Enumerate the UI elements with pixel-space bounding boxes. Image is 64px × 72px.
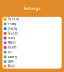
staticText: Sounds [8, 32, 18, 35]
button[interactable]: Siri [2, 50, 62, 54]
button[interactable]: Safari [2, 59, 62, 64]
staticText: Music [8, 64, 15, 68]
staticText: Battery [8, 55, 17, 59]
staticText: Wallet [8, 41, 16, 44]
button[interactable]: Health [2, 45, 62, 50]
button[interactable]: Sounds [2, 31, 62, 36]
button[interactable]: Wallet [2, 40, 62, 45]
staticText: Safari [8, 60, 14, 63]
button[interactable]: Focus [2, 36, 62, 40]
button[interactable]: Display [2, 26, 62, 31]
button[interactable]: Privacy [2, 22, 62, 26]
staticText: Health [8, 46, 17, 49]
staticText: Settings [23, 5, 40, 11]
staticText: Privacy [8, 22, 16, 26]
button[interactable]: Battery [2, 54, 62, 59]
staticText: Focus [8, 36, 15, 40]
staticText: General [8, 17, 19, 21]
button[interactable]: General [2, 17, 62, 22]
staticText: Display [8, 27, 17, 30]
button[interactable]: Music [2, 64, 62, 69]
staticText: Siri [8, 50, 12, 54]
